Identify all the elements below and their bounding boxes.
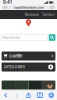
button[interactable]: Contact (42, 13, 54, 16)
button[interactable]: Address (0, 5, 57, 10)
staticText: CATEGORIES (4, 65, 25, 69)
button[interactable]: Forward (11, 90, 23, 100)
staticText: Boutique (25, 13, 39, 16)
button[interactable]: Tabs (46, 90, 57, 100)
button[interactable]: Bookmarks (34, 90, 46, 100)
staticText: aA (3, 6, 7, 9)
button[interactable]: Back (0, 90, 11, 100)
button[interactable]: Cuvette (0, 51, 57, 61)
button[interactable]: Boutique (25, 13, 39, 16)
staticText: Contact (42, 13, 54, 16)
staticText: Cuvette (9, 54, 22, 58)
staticText: 9:41 (3, 0, 12, 5)
button[interactable]: Search (49, 34, 55, 41)
button[interactable]: Share (23, 90, 34, 100)
staticText: Recherche (3, 35, 20, 40)
staticText: lapetiteombre.com (14, 5, 44, 10)
button[interactable]: CATEGORIES (0, 62, 57, 72)
